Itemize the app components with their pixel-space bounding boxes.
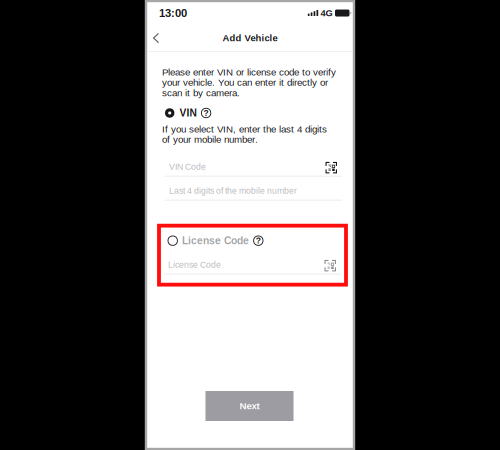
staticText: License Code [182,235,249,246]
button[interactable]: License Code [164,234,341,248]
button[interactable]: Back [146,26,166,50]
staticText: ? [256,236,261,245]
staticText: License Code [168,260,221,269]
staticText: VIN Code [169,162,206,171]
staticText: If you select VIN, enter the last 4 digi… [162,124,327,145]
staticText: VIN [179,107,196,118]
staticText: Add Vehicle [222,33,277,43]
staticText: Please enter VIN or license code to veri… [162,67,336,98]
staticText: Last 4 digits of the mobile number [169,186,297,195]
button[interactable]: Next [205,391,293,421]
staticText: ? [204,108,209,118]
staticText: 4G [321,8,333,18]
staticText: Next [239,401,259,411]
button[interactable]: VIN [165,106,339,120]
staticText: 13:00 [159,7,187,19]
